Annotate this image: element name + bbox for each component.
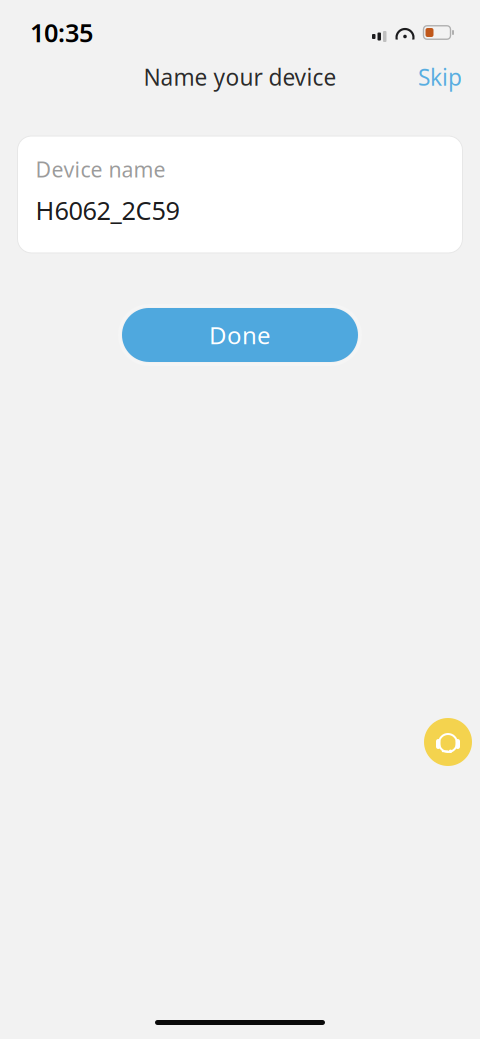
button[interactable]: Done [122,308,358,362]
button[interactable]: Skip [404,54,476,100]
button[interactable]: Customer support [424,718,472,766]
staticText: Device name [35,155,165,183]
staticText: Name your device [143,62,336,92]
staticText: Done [209,319,271,351]
staticText: 10:35 [30,16,93,49]
staticText: H6062_2C59 [35,193,179,227]
staticText: Skip [418,62,462,92]
